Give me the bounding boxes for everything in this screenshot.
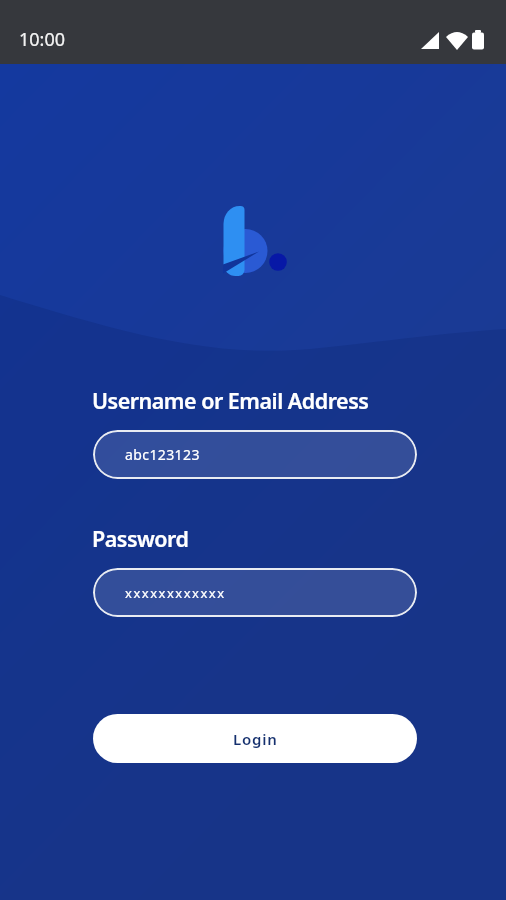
staticText: abc123123 [125, 445, 200, 464]
staticText: Password [92, 524, 189, 553]
staticText: Login [233, 729, 278, 749]
button[interactable]: abc123123 [93, 430, 417, 479]
staticText: Username or Email Address [92, 386, 369, 415]
button[interactable]: Login [93, 714, 417, 763]
button[interactable]: xxxxxxxxxxxx [93, 568, 417, 617]
staticText: xxxxxxxxxxxx [125, 584, 226, 602]
staticText: 10:00 [19, 27, 66, 52]
